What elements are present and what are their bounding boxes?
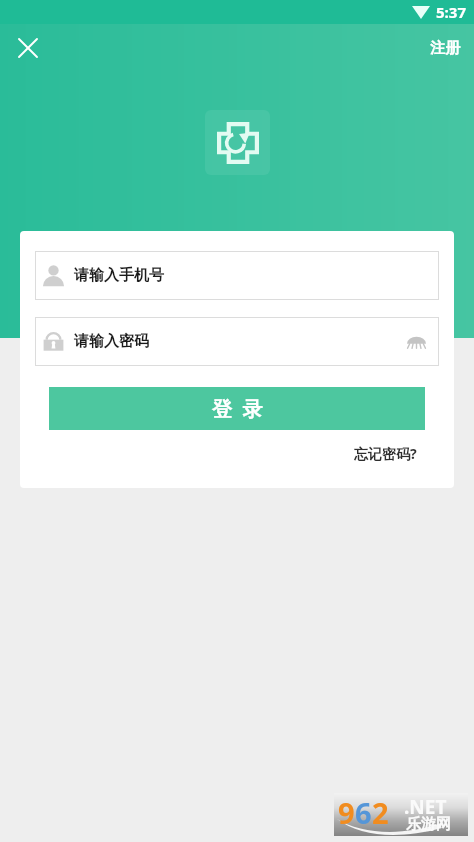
staticText: 请输入密码 (74, 332, 149, 351)
button[interactable]: 忘记密码? (354, 440, 454, 467)
staticText: 登 录 (212, 395, 263, 422)
staticText: .NET (404, 794, 447, 820)
button[interactable]: 注册 (416, 29, 474, 68)
button[interactable]: Close (9, 29, 47, 67)
staticText: 忘记密码? (354, 444, 417, 463)
staticText: 2 (372, 793, 389, 832)
button[interactable]: 登 录 (49, 387, 425, 430)
staticText: 乐游网 (406, 815, 451, 834)
staticText: 请输入手机号 (74, 266, 164, 285)
staticText: 9 (338, 793, 355, 832)
staticText: 5:37 (436, 2, 466, 22)
staticText: 注册 (430, 39, 460, 58)
button[interactable]: 请输入密码 (35, 317, 439, 366)
button[interactable]: 请输入手机号 (35, 251, 439, 300)
staticText: 6 (355, 793, 372, 832)
button[interactable]: Show password (403, 329, 429, 355)
